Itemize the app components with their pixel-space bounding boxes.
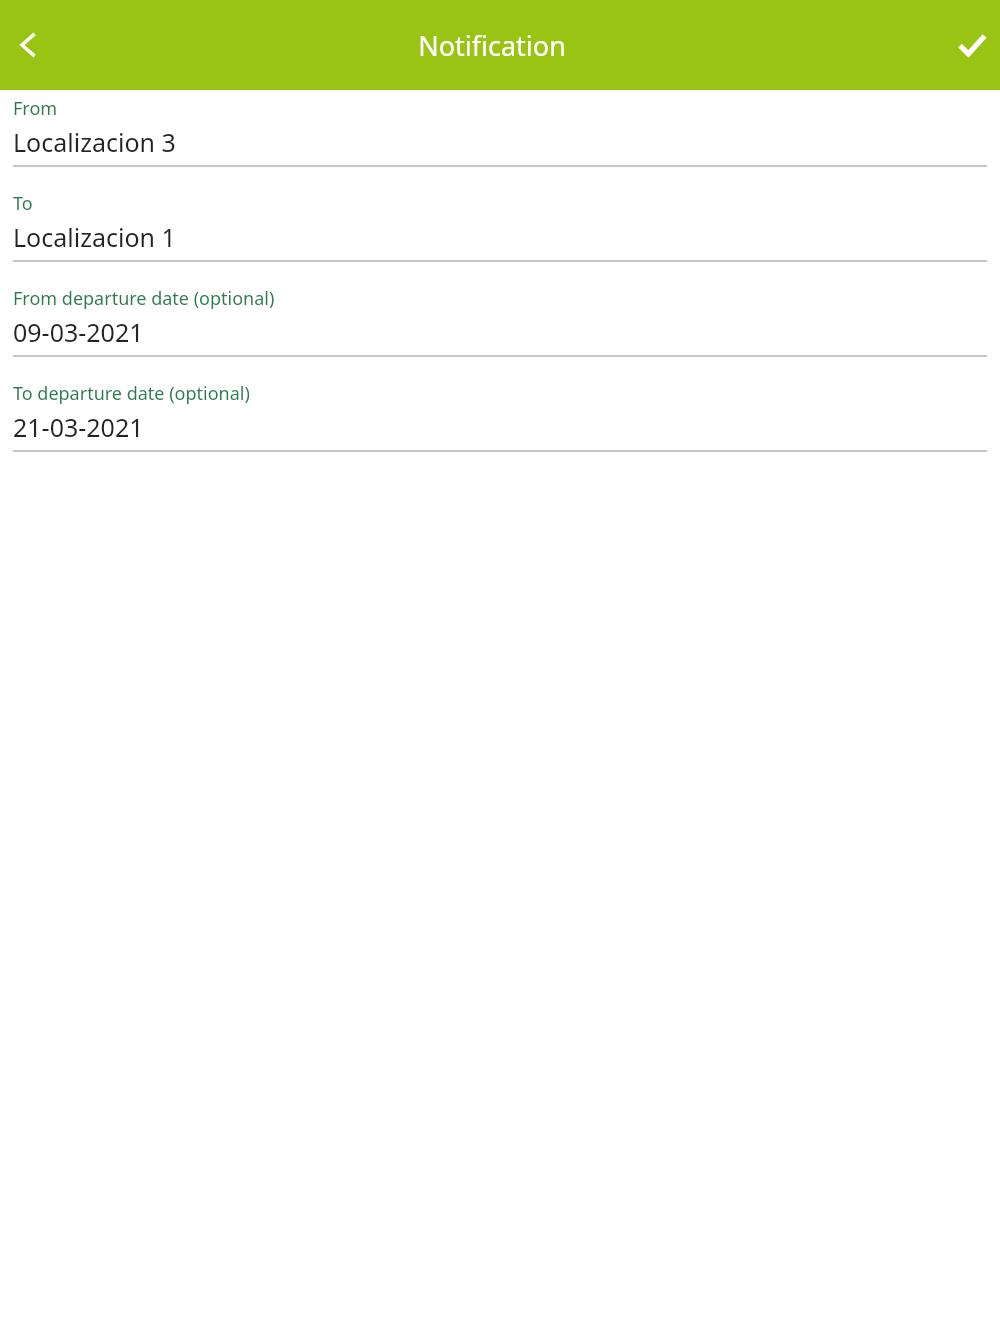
button[interactable]: Confirm	[946, 19, 998, 71]
staticText: Localizacion 1	[13, 220, 176, 254]
button[interactable]: Back	[2, 19, 54, 71]
button[interactable]: From	[0, 96, 1000, 191]
button[interactable]: To	[0, 191, 1000, 286]
staticText: Localizacion 3	[13, 125, 176, 159]
button[interactable]: To departure date (optional)	[0, 381, 1000, 476]
staticText: 09-03-2021	[13, 315, 144, 349]
staticText: From departure date (optional)	[13, 286, 275, 311]
staticText: 21-03-2021	[13, 410, 144, 444]
staticText: To	[13, 191, 33, 216]
staticText: From	[13, 96, 58, 121]
button[interactable]: From departure date (optional)	[0, 286, 1000, 381]
staticText: Notification	[418, 27, 566, 64]
staticText: To departure date (optional)	[13, 381, 250, 406]
